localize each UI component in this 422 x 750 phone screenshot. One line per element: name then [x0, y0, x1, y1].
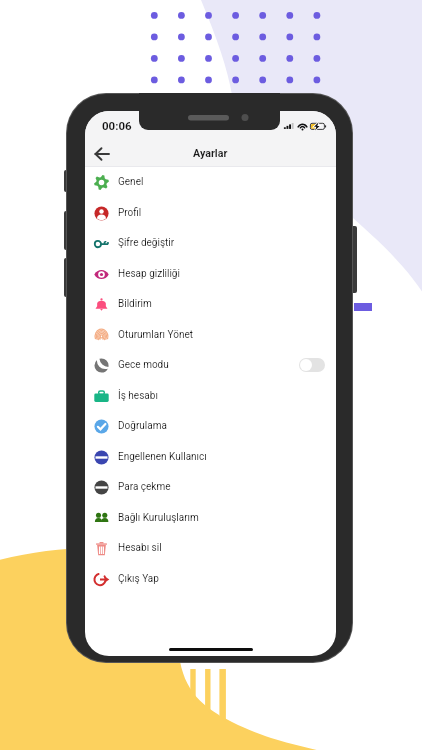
staticText: Bildirim	[118, 298, 152, 310]
button[interactable]: Doğrulama	[85, 411, 336, 441]
button[interactable]: Gece modu	[85, 350, 336, 380]
staticText: Gece modu	[118, 359, 169, 371]
button[interactable]: Hesap gizliliği	[85, 259, 336, 289]
staticText: 00:06	[102, 119, 132, 132]
button[interactable]: Genel	[85, 167, 336, 197]
staticText: Ayarlar	[193, 147, 228, 160]
button[interactable]: Profil	[85, 198, 336, 228]
staticText: Şifre değiştir	[118, 237, 175, 249]
button[interactable]: Bildirim	[85, 289, 336, 319]
staticText: Hesap gizliliği	[118, 268, 180, 280]
staticText: Profil	[118, 207, 142, 219]
button[interactable]: Oturumları Yönet	[85, 320, 336, 350]
button[interactable]: Çıkış Yap	[85, 564, 336, 594]
button[interactable]: Bağlı Kuruluşlarım	[85, 503, 336, 533]
staticText: Para çekme	[118, 481, 171, 493]
button[interactable]: Night mode toggle	[299, 358, 325, 372]
button[interactable]: İş hesabı	[85, 381, 336, 411]
staticText: Genel	[118, 176, 144, 188]
staticText: Engellenen Kullanıcı	[118, 451, 207, 463]
button[interactable]: Hesabı sil	[85, 533, 336, 563]
staticText: İş hesabı	[118, 390, 158, 402]
button[interactable]: Şifre değiştir	[85, 228, 336, 258]
button[interactable]: Para çekme	[85, 472, 336, 502]
staticText: Doğrulama	[118, 420, 167, 432]
staticText: Hesabı sil	[118, 542, 162, 554]
staticText: Çıkış Yap	[118, 573, 159, 585]
button[interactable]: Engellenen Kullanıcı	[85, 442, 336, 472]
button[interactable]: Back	[91, 143, 113, 165]
staticText: Oturumları Yönet	[118, 329, 194, 341]
staticText: Bağlı Kuruluşlarım	[118, 512, 199, 524]
